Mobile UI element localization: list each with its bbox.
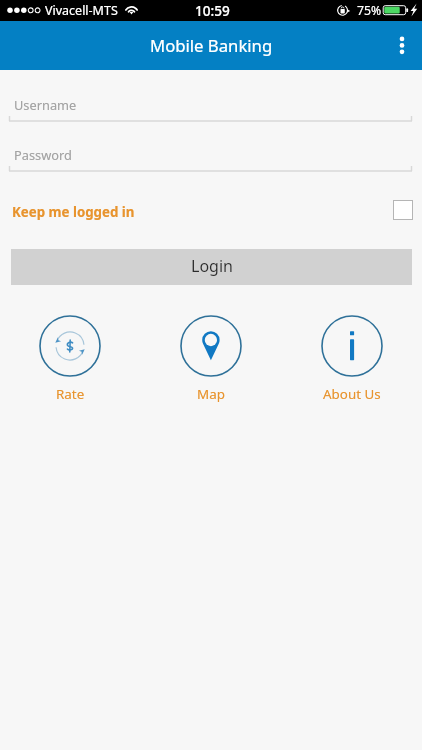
button[interactable]: Login (11, 249, 412, 285)
staticText: Vivacell-MTS (45, 2, 118, 19)
staticText: About Us (323, 385, 381, 403)
staticText: Username (14, 96, 77, 113)
button[interactable]: Keep me logged in checkbox (393, 200, 413, 220)
staticText: Keep me logged in (12, 203, 135, 221)
button[interactable]: Rate (20, 314, 120, 403)
button[interactable]: More options (376, 23, 422, 69)
button[interactable]: About Us (302, 314, 402, 403)
button[interactable]: Username (0, 96, 422, 136)
button[interactable]: Map (161, 314, 261, 403)
staticText: Mobile Banking (150, 34, 273, 57)
button[interactable]: Keep me logged in (8, 198, 158, 226)
staticText: 10:59 (195, 1, 230, 20)
staticText: 75% (357, 2, 382, 19)
staticText: Rate (56, 385, 85, 403)
staticText: Map (197, 385, 225, 403)
staticText: Login (191, 255, 233, 277)
staticText: Password (14, 146, 72, 163)
button[interactable]: Password (0, 146, 422, 186)
